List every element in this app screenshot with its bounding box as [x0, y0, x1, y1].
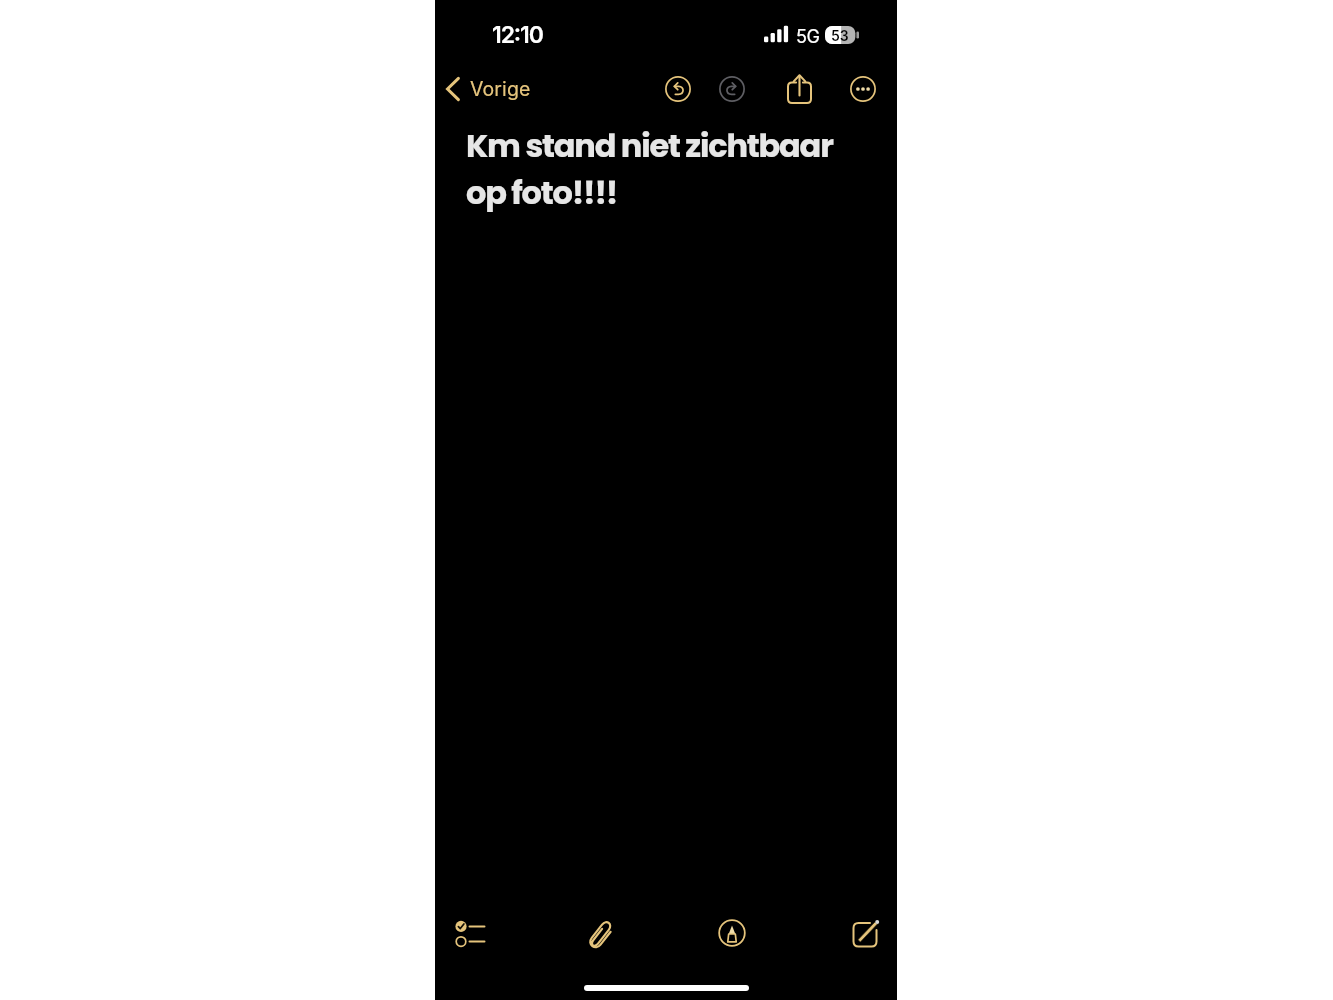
staticText: 5G — [796, 26, 820, 48]
staticText: 12:10 — [492, 21, 543, 49]
button[interactable]: New note — [851, 919, 883, 951]
button[interactable]: Undo — [665, 76, 691, 102]
staticText: Vorige — [470, 77, 531, 101]
staticText: Km stand niet zichtbaar op foto!!!! — [466, 123, 833, 215]
button[interactable]: Redo — [719, 76, 745, 102]
button[interactable]: Checklist — [453, 918, 487, 950]
button[interactable]: Vorige — [444, 71, 531, 107]
button[interactable]: Attach — [587, 918, 615, 952]
button[interactable]: More options — [850, 76, 876, 102]
button[interactable]: Share — [786, 73, 814, 105]
button[interactable]: Note body — [435, 110, 897, 910]
staticText: 53 — [831, 27, 849, 44]
button[interactable]: Markup — [718, 919, 746, 947]
